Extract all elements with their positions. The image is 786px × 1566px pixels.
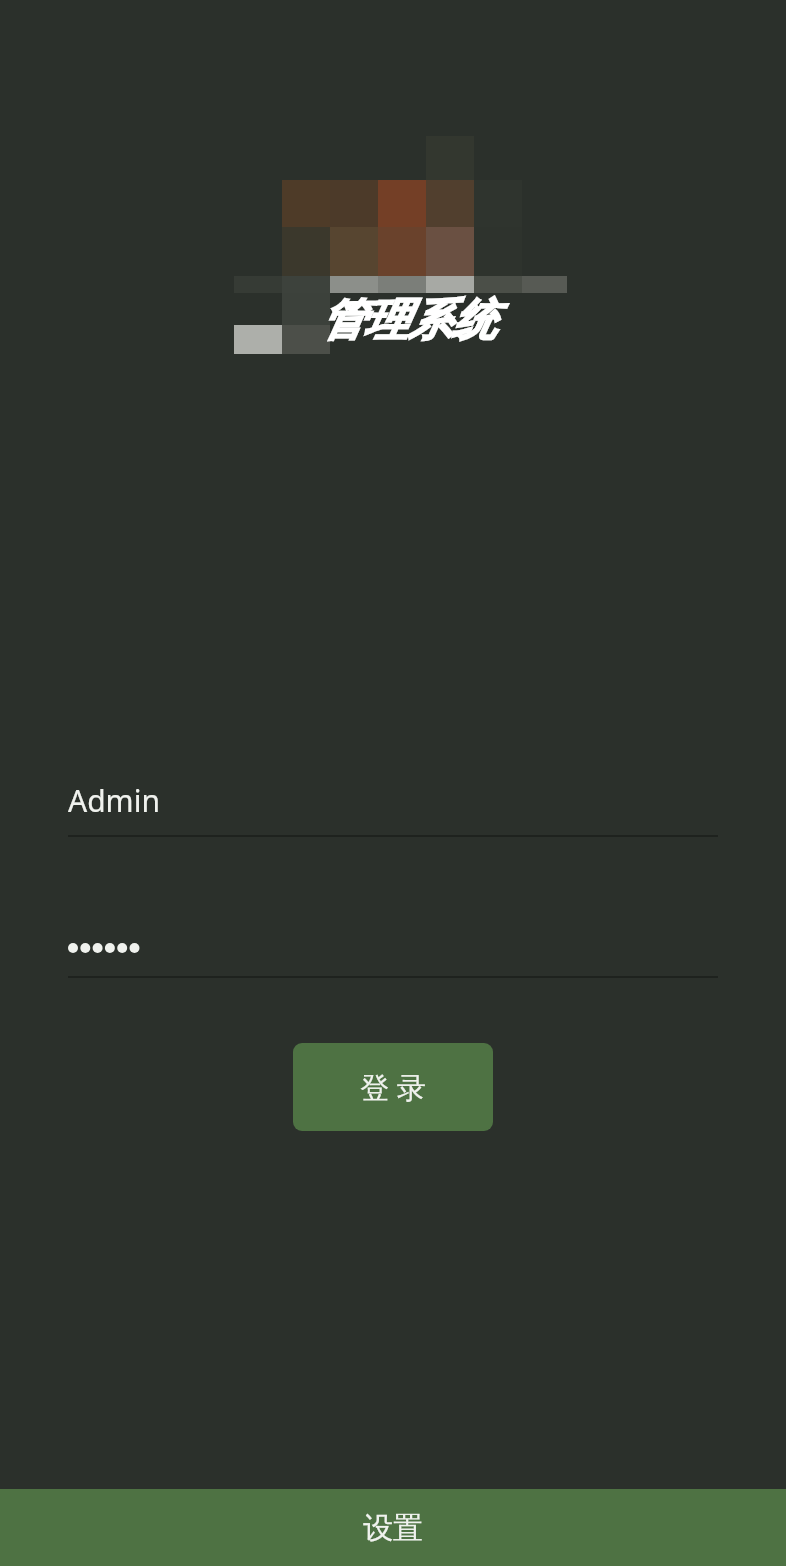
- button[interactable]: 登 录: [293, 1043, 493, 1131]
- button[interactable]: Admin: [68, 780, 718, 823]
- button[interactable]: 设置: [0, 1489, 786, 1566]
- staticText: Admin: [68, 780, 160, 821]
- staticText: 登 录: [360, 1067, 426, 1107]
- staticText: 设置: [363, 1509, 423, 1547]
- staticText: 管理系统: [320, 293, 496, 348]
